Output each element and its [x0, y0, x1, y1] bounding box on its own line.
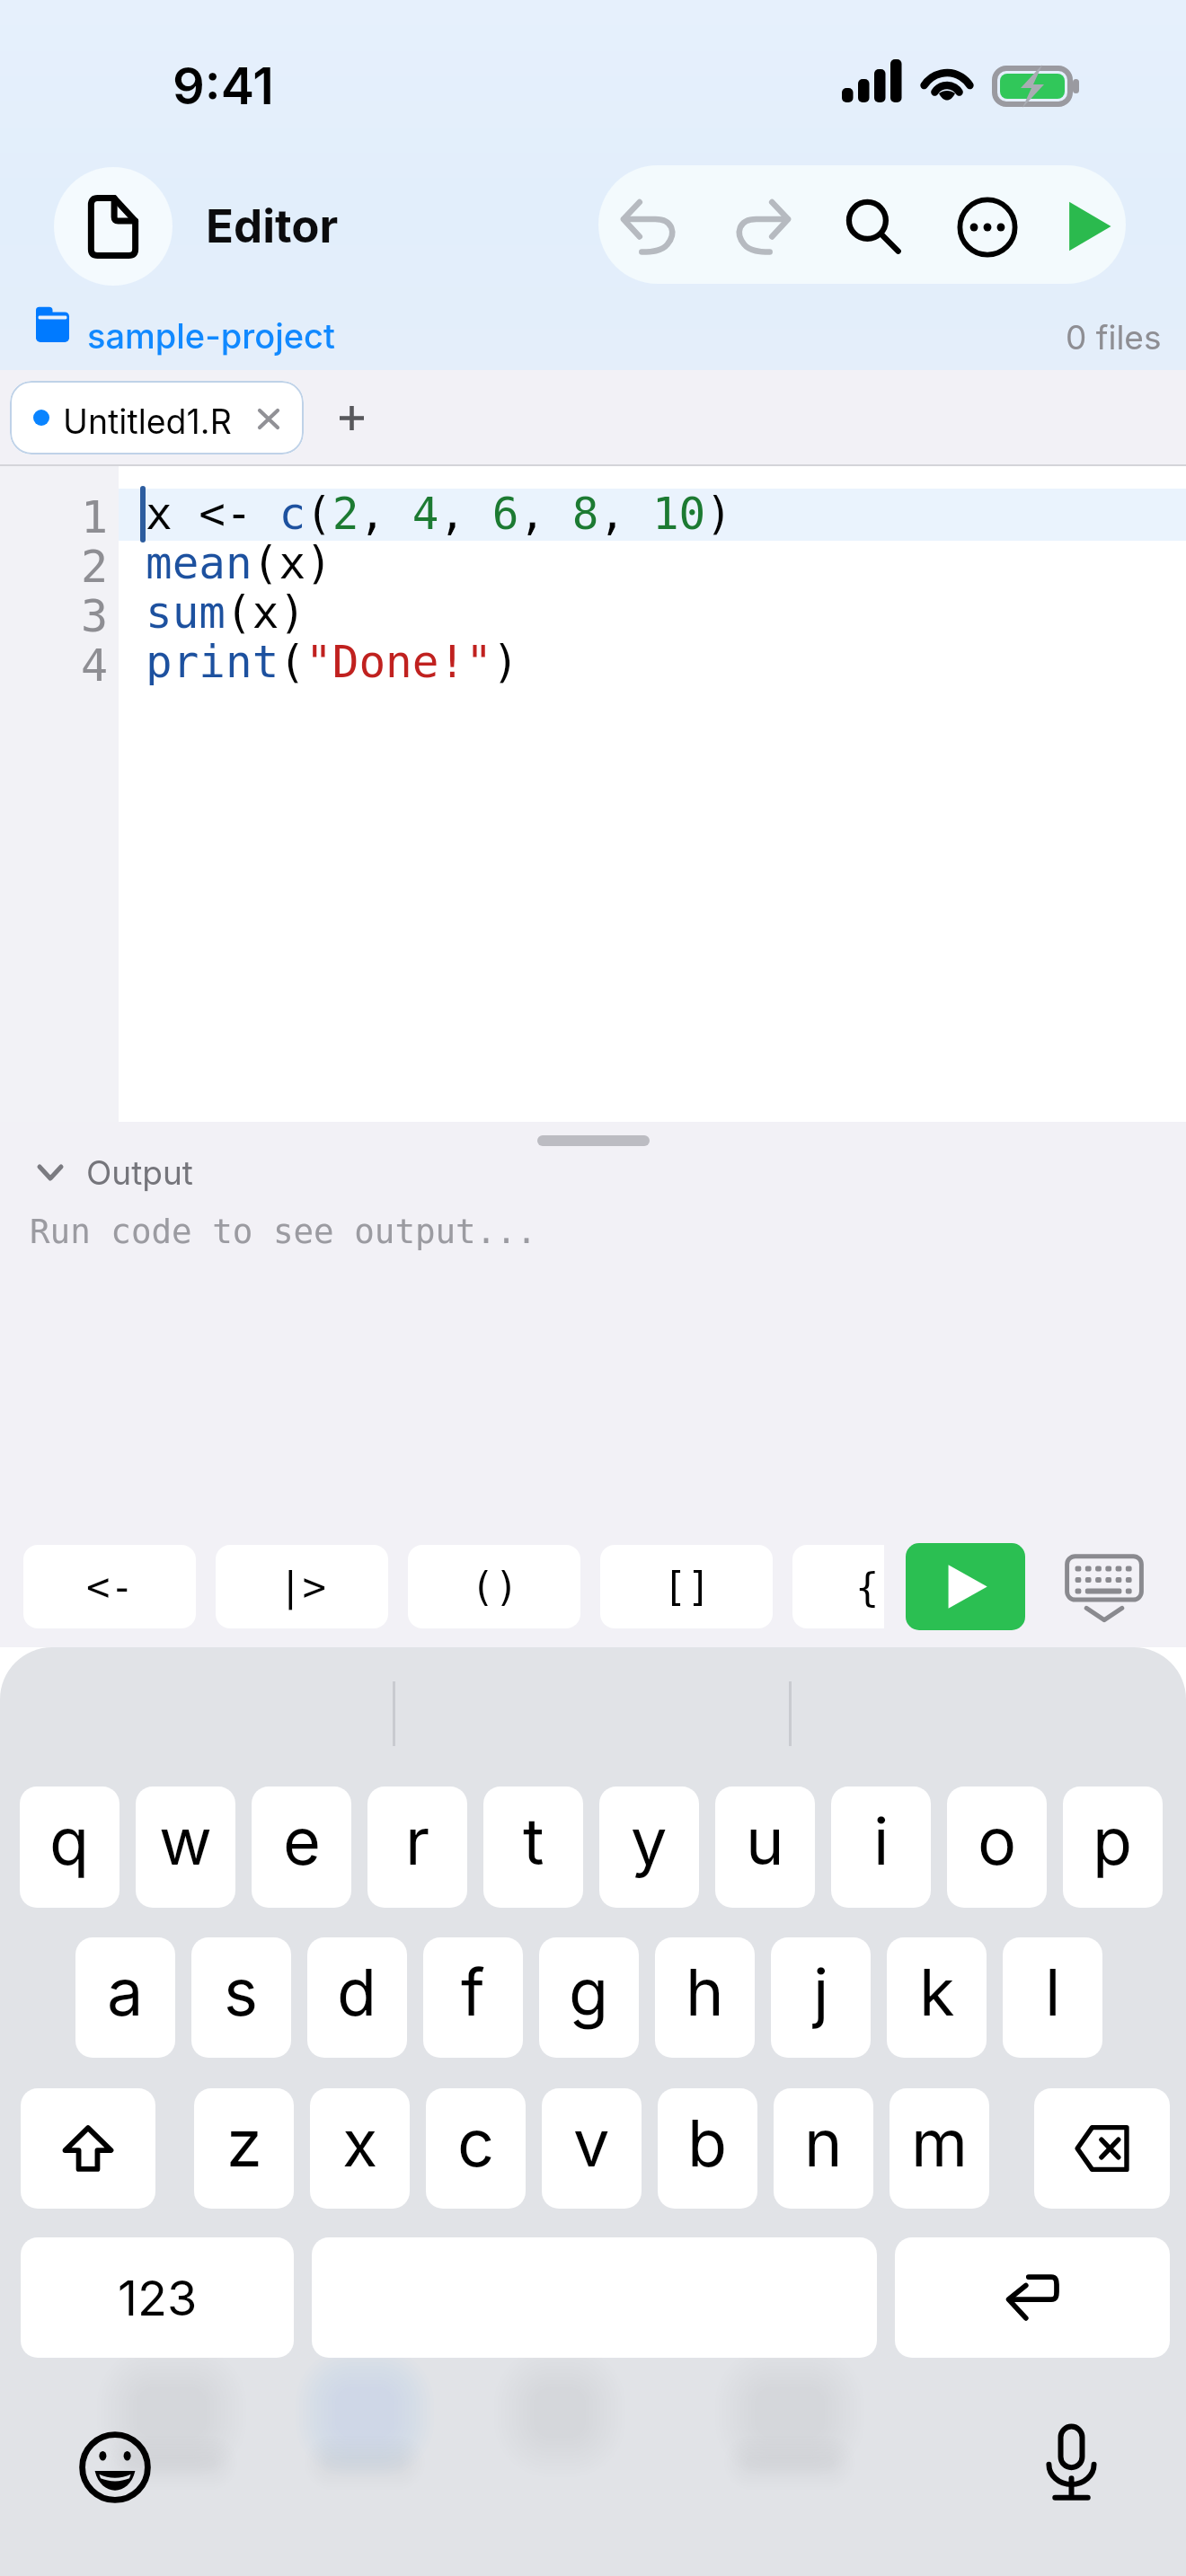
staticText: x <- c(2, 4, 6, 8, 10) — [146, 488, 732, 537]
staticText: 4 — [81, 640, 109, 689]
staticText: Output — [86, 1152, 193, 1193]
button[interactable]: Backspace — [1034, 2088, 1170, 2209]
button[interactable]: m — [889, 2088, 989, 2209]
button[interactable]: o — [947, 1786, 1047, 1908]
staticText: x — [342, 2104, 378, 2182]
button[interactable]: k — [887, 1937, 987, 2058]
staticText: sum(x) — [146, 587, 306, 636]
button[interactable]: v — [542, 2088, 642, 2209]
staticText: q — [49, 1802, 90, 1880]
button[interactable]: i — [831, 1786, 931, 1908]
button[interactable]: b — [658, 2088, 757, 2209]
staticText: print("Done!") — [146, 636, 519, 685]
staticText: l — [1045, 1953, 1061, 2031]
button[interactable]: u — [715, 1786, 815, 1908]
staticText: k — [919, 1953, 955, 2031]
staticText: 0 files — [1066, 317, 1162, 357]
staticText: c — [457, 2104, 495, 2182]
button[interactable]: |> — [216, 1545, 388, 1628]
button[interactable]: a — [75, 1937, 175, 2058]
staticText: y — [631, 1802, 668, 1880]
staticText: u — [746, 1802, 784, 1880]
button[interactable]: New file — [320, 388, 383, 447]
button[interactable]: j — [771, 1937, 871, 2058]
staticText: Run code to see output... — [30, 1212, 537, 1251]
button[interactable]: w — [136, 1786, 235, 1908]
button[interactable]: e — [252, 1786, 351, 1908]
button[interactable]: Search — [828, 167, 918, 284]
button[interactable]: y — [599, 1786, 699, 1908]
staticText: i — [873, 1802, 889, 1880]
button[interactable]: n — [774, 2088, 873, 2209]
button[interactable]: [] — [600, 1545, 773, 1628]
staticText: v — [573, 2104, 610, 2182]
button[interactable]: () — [408, 1545, 580, 1628]
staticText: { — [855, 1565, 880, 1610]
staticText: a — [107, 1953, 144, 2031]
staticText: Untitled1.R — [63, 401, 232, 442]
button[interactable]: g — [539, 1937, 639, 2058]
staticText: sample-project — [87, 315, 335, 357]
button[interactable]: t — [483, 1786, 583, 1908]
button[interactable]: Run code — [906, 1543, 1025, 1630]
button[interactable]: Close tab — [242, 399, 296, 438]
button[interactable]: Undo — [605, 167, 695, 284]
button[interactable]: r — [367, 1786, 467, 1908]
staticText: mean(x) — [146, 537, 332, 587]
staticText: [] — [663, 1564, 711, 1610]
button[interactable]: p — [1063, 1786, 1163, 1908]
button[interactable]: Run — [1043, 167, 1126, 284]
button[interactable]: s — [191, 1937, 291, 2058]
staticText: Editor — [206, 198, 339, 254]
button[interactable]: File — [54, 167, 173, 286]
staticText: f — [461, 1953, 485, 2031]
staticText: r — [405, 1802, 430, 1880]
staticText: g — [569, 1953, 609, 2031]
staticText: s — [224, 1953, 259, 2031]
staticText: 3 — [81, 590, 109, 640]
staticText: b — [687, 2104, 728, 2182]
button[interactable]: Collapse output — [22, 1145, 219, 1206]
button[interactable]: { — [792, 1545, 884, 1628]
button[interactable]: c — [426, 2088, 526, 2209]
staticText: 1 — [81, 491, 109, 541]
button[interactable]: Redo — [717, 167, 807, 284]
button[interactable]: q — [20, 1786, 119, 1908]
staticText: j — [813, 1953, 829, 2031]
button[interactable]: f — [423, 1937, 523, 2058]
staticText: n — [804, 2104, 843, 2182]
button[interactable]: l — [1003, 1937, 1102, 2058]
button[interactable]: Dictation — [1026, 2418, 1116, 2508]
button[interactable]: x — [310, 2088, 410, 2209]
staticText: 2 — [81, 541, 109, 590]
staticText: 123 — [118, 2269, 198, 2327]
button[interactable]: d — [307, 1937, 407, 2058]
staticText: m — [911, 2104, 969, 2182]
button[interactable]: z — [194, 2088, 294, 2209]
button[interactable]: Shift — [21, 2088, 155, 2209]
button[interactable]: h — [655, 1937, 755, 2058]
staticText: () — [471, 1564, 518, 1610]
button[interactable]: Hide keyboard — [1057, 1549, 1152, 1625]
staticText: e — [283, 1802, 321, 1880]
button[interactable]: Untitled1.R — [10, 381, 304, 454]
staticText: t — [523, 1802, 544, 1880]
button[interactable]: More options — [943, 168, 1032, 284]
staticText: h — [686, 1953, 724, 2031]
staticText: w — [159, 1802, 212, 1880]
button[interactable]: Emoji — [70, 2422, 160, 2512]
button[interactable]: Space — [312, 2237, 877, 2358]
staticText: d — [337, 1953, 377, 2031]
button[interactable]: <- — [23, 1545, 196, 1628]
staticText: 9:41 — [173, 56, 274, 117]
staticText: <- — [86, 1564, 134, 1610]
button[interactable]: Return — [895, 2237, 1170, 2358]
staticText: z — [226, 2104, 262, 2182]
staticText: o — [978, 1802, 1017, 1880]
button[interactable]: 123 — [21, 2237, 294, 2358]
staticText: p — [1093, 1802, 1133, 1880]
staticText: |> — [279, 1564, 326, 1610]
